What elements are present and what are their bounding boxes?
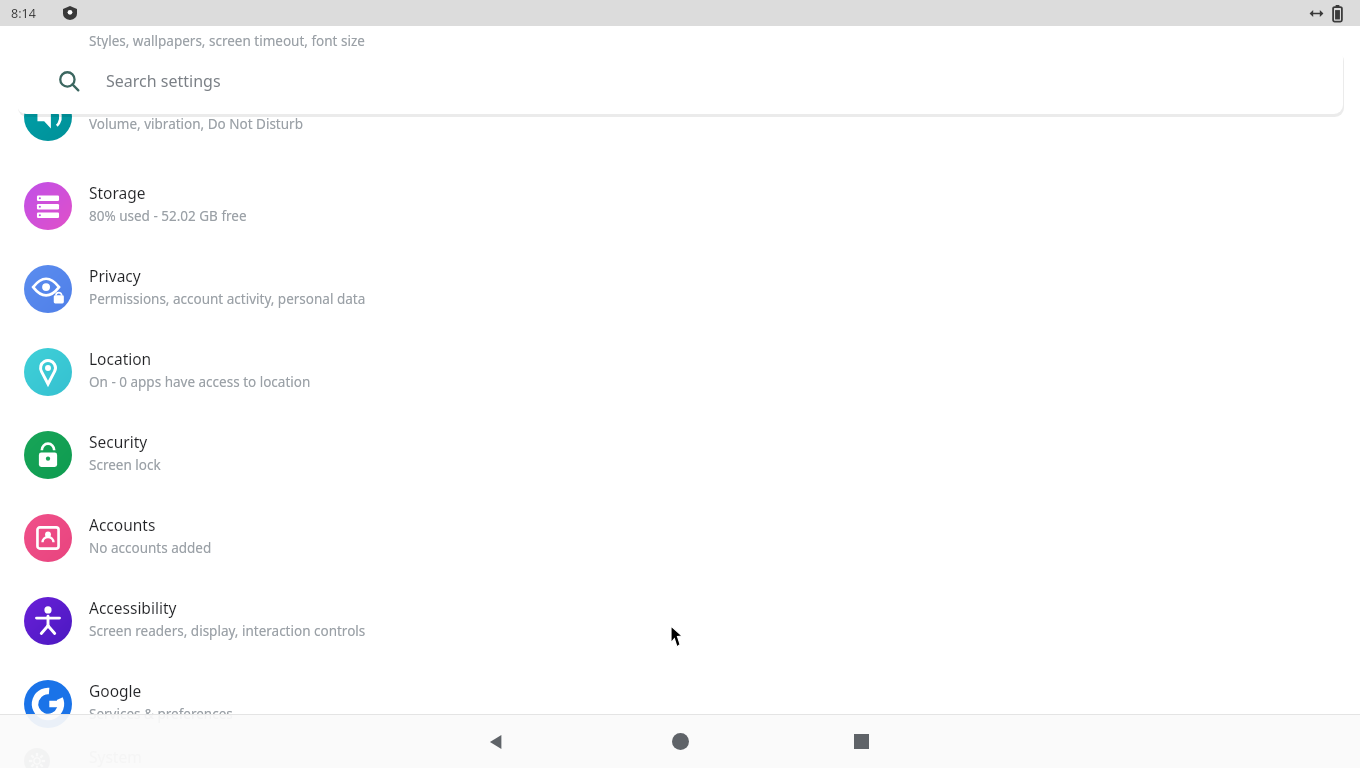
button[interactable]: Home: [640, 715, 720, 768]
button[interactable]: Location: [0, 336, 1360, 419]
button[interactable]: Back: [457, 715, 537, 768]
button[interactable]: Storage: [0, 170, 1360, 253]
button[interactable]: Accessibility: [0, 585, 1360, 668]
staticText: Accounts: [89, 514, 156, 535]
staticText: Screen lock: [89, 456, 161, 474]
button[interactable]: Security: [0, 419, 1360, 502]
staticText: Privacy: [89, 265, 141, 286]
staticText: Accessibility: [89, 597, 177, 618]
staticText: Volume, vibration, Do Not Disturb: [89, 115, 303, 133]
button[interactable]: Accounts: [0, 502, 1360, 585]
other: Search: [59, 71, 80, 92]
button[interactable]: Recent apps: [821, 715, 901, 768]
staticText: 8:14: [11, 5, 36, 22]
staticText: Search settings: [106, 70, 221, 92]
staticText: Permissions, account activity, personal …: [89, 290, 366, 308]
staticText: Styles, wallpapers, screen timeout, font…: [89, 32, 365, 50]
button[interactable]: Styles, wallpapers, screen timeout, font…: [0, 0, 1360, 46]
staticText: No accounts added: [89, 539, 212, 557]
staticText: Location: [89, 348, 152, 369]
staticText: Storage: [89, 182, 146, 203]
button[interactable]: Volume, vibration, Do Not Disturb: [0, 85, 1360, 143]
staticText: Screen readers, display, interaction con…: [89, 622, 366, 640]
staticText: Services & preferences: [89, 705, 233, 723]
staticText: Security: [89, 431, 148, 452]
button[interactable]: Privacy: [0, 253, 1360, 336]
staticText: On - 0 apps have access to location: [89, 373, 311, 391]
staticText: Google: [89, 680, 142, 701]
staticText: 80% used - 52.02 GB free: [89, 207, 247, 225]
button[interactable]: Search: [17, 49, 1343, 114]
button[interactable]: Google: [0, 668, 1360, 751]
